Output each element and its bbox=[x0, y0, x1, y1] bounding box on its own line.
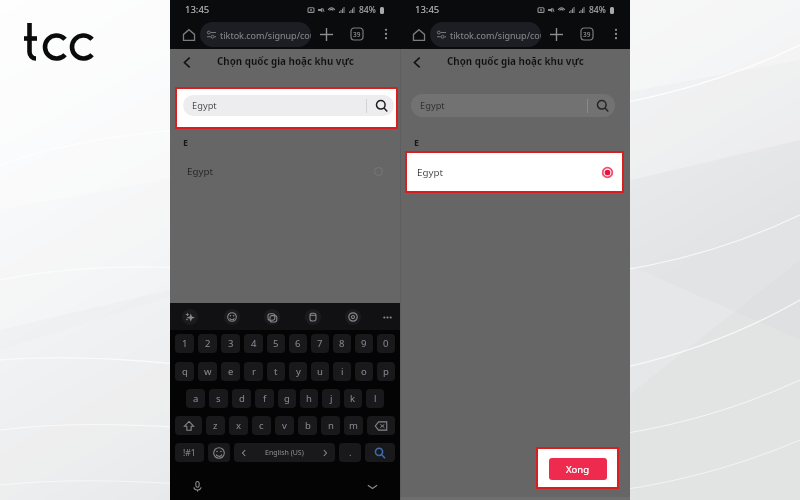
staticText: 13:45 bbox=[415, 3, 440, 16]
staticText: j bbox=[330, 392, 333, 405]
button[interactable]: New tab bbox=[316, 24, 336, 44]
staticText: 39 bbox=[583, 30, 591, 39]
staticText: 0 bbox=[383, 337, 389, 350]
button[interactable]: spark bbox=[182, 309, 198, 325]
button[interactable]: Egypt bbox=[183, 95, 394, 116]
button[interactable]: b bbox=[298, 416, 317, 435]
button[interactable]: d bbox=[232, 389, 251, 408]
staticText: 7 bbox=[317, 337, 323, 350]
staticText: Egypt bbox=[420, 99, 445, 112]
button[interactable]: tiktok.com/signup/cour bbox=[200, 22, 311, 47]
button[interactable]: Egypt bbox=[187, 162, 383, 181]
staticText: f bbox=[263, 392, 267, 405]
button[interactable]: 8 bbox=[333, 334, 351, 353]
button[interactable]: x bbox=[229, 416, 248, 435]
button[interactable]: i bbox=[333, 362, 351, 381]
button[interactable]: Xong bbox=[549, 458, 607, 480]
staticText: c bbox=[259, 419, 264, 432]
button[interactable]: !#1 bbox=[175, 443, 204, 462]
button[interactable]: Back bbox=[406, 51, 428, 73]
staticText: E bbox=[183, 136, 189, 148]
staticText: v bbox=[282, 419, 287, 432]
button[interactable]: t bbox=[267, 362, 285, 381]
button[interactable]: 0 bbox=[377, 334, 395, 353]
staticText: s bbox=[216, 392, 221, 405]
button[interactable]: Home bbox=[179, 25, 198, 44]
button[interactable]: gear bbox=[345, 309, 361, 325]
button[interactable]: Tabs bbox=[577, 24, 597, 44]
button[interactable]: clip bbox=[305, 309, 321, 325]
button[interactable]: Hide keyboard bbox=[345, 473, 400, 500]
button[interactable]: 1 bbox=[175, 334, 194, 353]
staticText: l bbox=[374, 392, 377, 405]
button[interactable]: o bbox=[355, 362, 373, 381]
button[interactable]: Egypt bbox=[417, 153, 613, 191]
staticText: u bbox=[317, 365, 323, 378]
button[interactable]: u bbox=[311, 362, 329, 381]
button[interactable]: emoji bbox=[224, 309, 240, 325]
button[interactable]: n bbox=[321, 416, 340, 435]
button[interactable]: 6 bbox=[289, 334, 307, 353]
staticText: m bbox=[349, 419, 358, 432]
button[interactable]: e bbox=[221, 362, 240, 381]
staticText: i bbox=[341, 365, 344, 378]
button[interactable]: Back bbox=[176, 51, 198, 73]
button[interactable]: 9 bbox=[355, 334, 373, 353]
staticText: Egypt bbox=[417, 166, 444, 179]
button[interactable]: Egypt bbox=[411, 94, 615, 117]
button[interactable]: w bbox=[198, 362, 217, 381]
button[interactable]: q bbox=[175, 362, 194, 381]
staticText: n bbox=[328, 419, 334, 432]
button[interactable]: k bbox=[344, 389, 362, 408]
button[interactable]: tiktok.com/signup/cour bbox=[430, 22, 541, 47]
button[interactable]: 3 bbox=[221, 334, 240, 353]
button[interactable]: v bbox=[275, 416, 294, 435]
button[interactable]: Voice input bbox=[170, 473, 225, 500]
button[interactable]: p bbox=[377, 362, 395, 381]
button[interactable]: a bbox=[186, 389, 205, 408]
button[interactable]: m bbox=[344, 416, 363, 435]
button[interactable]: z bbox=[206, 416, 225, 435]
staticText: a bbox=[193, 392, 199, 405]
staticText: z bbox=[213, 419, 218, 432]
staticText: g bbox=[284, 392, 290, 405]
staticText: 9 bbox=[361, 337, 367, 350]
button[interactable]: search bbox=[365, 443, 395, 462]
staticText: 8 bbox=[339, 337, 345, 350]
button[interactable]: f bbox=[255, 389, 274, 408]
button[interactable]: New tab bbox=[546, 24, 566, 44]
staticText: Chọn quốc gia hoặc khu vực bbox=[217, 55, 354, 68]
staticText: E bbox=[414, 136, 420, 148]
staticText: 6 bbox=[295, 337, 301, 350]
staticText: w bbox=[204, 365, 212, 378]
button[interactable]: gif bbox=[264, 309, 280, 325]
button[interactable]: g bbox=[278, 389, 296, 408]
button[interactable]: dots bbox=[379, 309, 395, 325]
button[interactable]: shift bbox=[175, 416, 202, 435]
button[interactable]: s bbox=[209, 389, 228, 408]
button[interactable]: More options bbox=[376, 24, 396, 44]
button[interactable]: Tabs bbox=[347, 24, 367, 44]
button[interactable]: l bbox=[366, 389, 384, 408]
button[interactable]: emoji bbox=[208, 443, 230, 462]
button[interactable]: 5 bbox=[267, 334, 285, 353]
staticText: 2 bbox=[205, 337, 211, 350]
staticText: Egypt bbox=[192, 99, 217, 112]
staticText: 3 bbox=[228, 337, 234, 350]
staticText: b bbox=[305, 419, 311, 432]
button[interactable]: j bbox=[322, 389, 340, 408]
button[interactable]: y bbox=[289, 362, 307, 381]
button[interactable]: 2 bbox=[198, 334, 217, 353]
button[interactable]: c bbox=[252, 416, 271, 435]
staticText: y bbox=[296, 365, 301, 378]
button[interactable]: 7 bbox=[311, 334, 329, 353]
staticText: Xong bbox=[566, 463, 590, 476]
button[interactable]: Home bbox=[409, 25, 428, 44]
button[interactable]: . bbox=[339, 443, 361, 462]
button[interactable]: English (US) bbox=[234, 443, 335, 462]
button[interactable]: More options bbox=[606, 24, 626, 44]
button[interactable]: r bbox=[244, 362, 263, 381]
button[interactable]: backspace bbox=[367, 416, 395, 435]
button[interactable]: h bbox=[300, 389, 318, 408]
button[interactable]: 4 bbox=[244, 334, 263, 353]
